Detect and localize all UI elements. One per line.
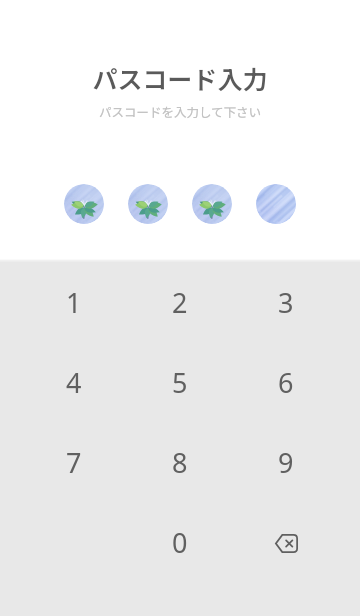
button[interactable]: 3 bbox=[233, 262, 339, 342]
staticText: 9 bbox=[278, 444, 294, 481]
button[interactable]: 7 bbox=[21, 422, 127, 502]
button[interactable]: 6 bbox=[233, 342, 339, 422]
staticText: 8 bbox=[172, 444, 188, 481]
button[interactable]: 1 bbox=[21, 262, 127, 342]
staticText: 3 bbox=[278, 284, 294, 321]
button[interactable]: Delete last digit bbox=[233, 502, 339, 582]
staticText: 6 bbox=[278, 364, 294, 401]
staticText: パスコードを入力して下さい bbox=[0, 102, 360, 120]
staticText: 5 bbox=[172, 364, 188, 401]
button[interactable]: 4 bbox=[21, 342, 127, 422]
staticText: 2 bbox=[172, 284, 188, 321]
staticText: パスコード入力 bbox=[0, 60, 360, 96]
staticText: 0 bbox=[172, 524, 188, 561]
button[interactable]: 0 bbox=[127, 502, 233, 582]
staticText: 1 bbox=[66, 284, 82, 321]
staticText: 7 bbox=[66, 444, 82, 481]
button[interactable]: 5 bbox=[127, 342, 233, 422]
button[interactable]: 2 bbox=[127, 262, 233, 342]
button[interactable]: 9 bbox=[233, 422, 339, 502]
button[interactable]: 8 bbox=[127, 422, 233, 502]
staticText: 4 bbox=[66, 364, 82, 401]
